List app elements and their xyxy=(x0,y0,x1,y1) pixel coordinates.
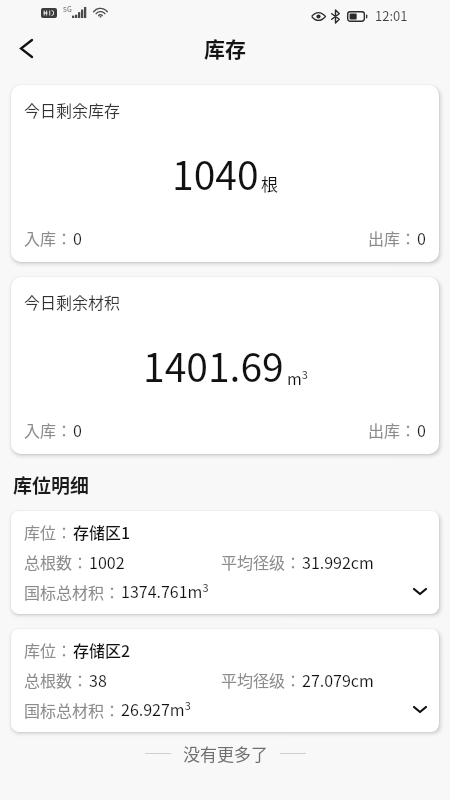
staticText: 总根数： xyxy=(24,550,89,573)
staticText: 1002 xyxy=(89,550,125,573)
staticText: 26.927m3 xyxy=(121,697,191,721)
staticText: 平均径级： xyxy=(221,550,302,573)
staticText: 平均径级： xyxy=(221,668,302,691)
staticText: 1040 xyxy=(172,145,259,201)
staticText: 根 xyxy=(261,171,278,196)
button[interactable]: 库位： xyxy=(11,629,439,732)
staticText: 入库： xyxy=(24,418,73,441)
staticText: 出库： xyxy=(368,226,417,249)
staticText: 0 xyxy=(73,418,82,441)
staticText: 1374.761m3 xyxy=(121,579,209,603)
staticText: 存储区2 xyxy=(73,638,131,661)
staticText: 存储区1 xyxy=(73,520,131,543)
staticText: 国标总材积： xyxy=(24,698,121,721)
button[interactable]: 今日剩余库存 xyxy=(11,85,439,262)
button[interactable]: 展开 xyxy=(407,578,433,604)
staticText: 12:01 xyxy=(375,6,408,25)
staticText: 国标总材积： xyxy=(24,580,121,603)
staticText: 5G xyxy=(63,4,72,14)
staticText: 入库： xyxy=(24,226,73,249)
staticText: 总根数： xyxy=(24,668,89,691)
staticText: 今日剩余材积 xyxy=(24,290,121,313)
staticText: 1401.69 xyxy=(143,337,284,393)
staticText: 没有更多了 xyxy=(183,741,268,766)
staticText: 0 xyxy=(417,418,426,441)
staticText: 库存 xyxy=(204,33,246,63)
staticText: 31.992cm xyxy=(302,550,374,573)
staticText: 出库： xyxy=(368,418,417,441)
button[interactable]: 返回 xyxy=(4,26,48,70)
staticText: 库位： xyxy=(24,638,73,661)
staticText: 0 xyxy=(417,226,426,249)
button[interactable]: 展开 xyxy=(407,696,433,722)
button[interactable]: 库位： xyxy=(11,511,439,614)
staticText: 0 xyxy=(73,226,82,249)
staticText: 库位明细 xyxy=(13,471,90,499)
staticText: m3 xyxy=(287,366,308,390)
staticText: 27.079cm xyxy=(302,668,374,691)
staticText: 库位： xyxy=(24,520,73,543)
staticText: 38 xyxy=(89,668,107,691)
button[interactable]: 今日剩余材积 xyxy=(11,277,439,454)
staticText: 今日剩余库存 xyxy=(24,98,121,121)
